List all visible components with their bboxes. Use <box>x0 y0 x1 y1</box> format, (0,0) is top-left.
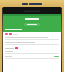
other: Alert <box>15 47 18 49</box>
button[interactable] <box>24 23 40 26</box>
button[interactable]: Alert <box>5 47 59 49</box>
button[interactable] <box>5 33 59 35</box>
button[interactable] <box>54 56 59 57</box>
button[interactable] <box>5 51 59 54</box>
button[interactable] <box>3 16 61 21</box>
